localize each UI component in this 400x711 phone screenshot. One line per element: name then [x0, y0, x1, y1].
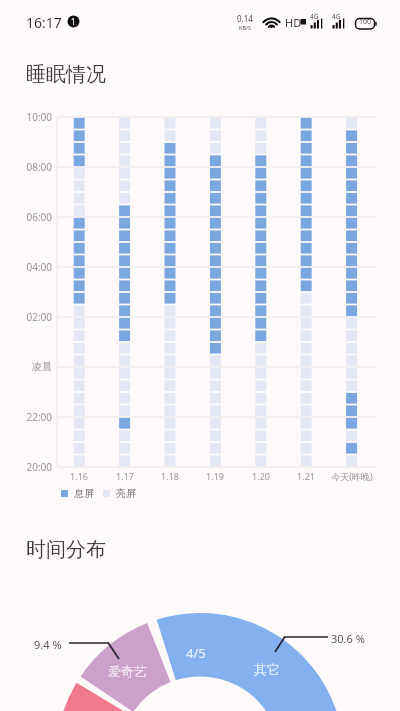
staticText: 其它	[254, 661, 280, 677]
staticText: 4G	[310, 12, 319, 21]
staticText: 1.17	[108, 470, 142, 482]
staticText: 9.4 %	[34, 637, 62, 652]
staticText: 22:00	[22, 410, 52, 424]
staticText: 100	[359, 17, 372, 27]
staticText: 今天(昨晚)	[322, 470, 382, 482]
staticText: 20:00	[22, 460, 52, 474]
staticText: 16:17	[26, 13, 62, 32]
staticText: 凌晨	[22, 360, 52, 373]
staticText: KB/S	[239, 24, 252, 31]
staticText: 息屏	[74, 487, 94, 500]
staticText: 10:00	[22, 110, 52, 124]
staticText: HD	[285, 15, 302, 30]
staticText: 1.21	[289, 470, 323, 482]
staticText: 06:00	[22, 210, 52, 224]
staticText: 1.20	[244, 470, 278, 482]
staticText: 02:00	[22, 310, 52, 324]
staticText: 1	[71, 16, 76, 27]
staticText: 亮屏	[116, 487, 136, 500]
staticText: 08:00	[22, 160, 52, 174]
staticText: 爱奇艺	[108, 663, 147, 679]
staticText: 时间分布	[26, 537, 106, 562]
staticText: 4G	[332, 12, 341, 21]
staticText: 0.14	[237, 13, 253, 24]
staticText: 1.18	[153, 470, 187, 482]
staticText: 30.6 %	[331, 631, 365, 646]
staticText: 04:00	[22, 260, 52, 274]
staticText: 1.16	[62, 470, 96, 482]
staticText: 睡眠情况	[26, 62, 106, 87]
staticText: 4/5	[186, 644, 206, 662]
staticText: 1.19	[198, 470, 232, 482]
button[interactable]: 息屏	[61, 487, 136, 500]
